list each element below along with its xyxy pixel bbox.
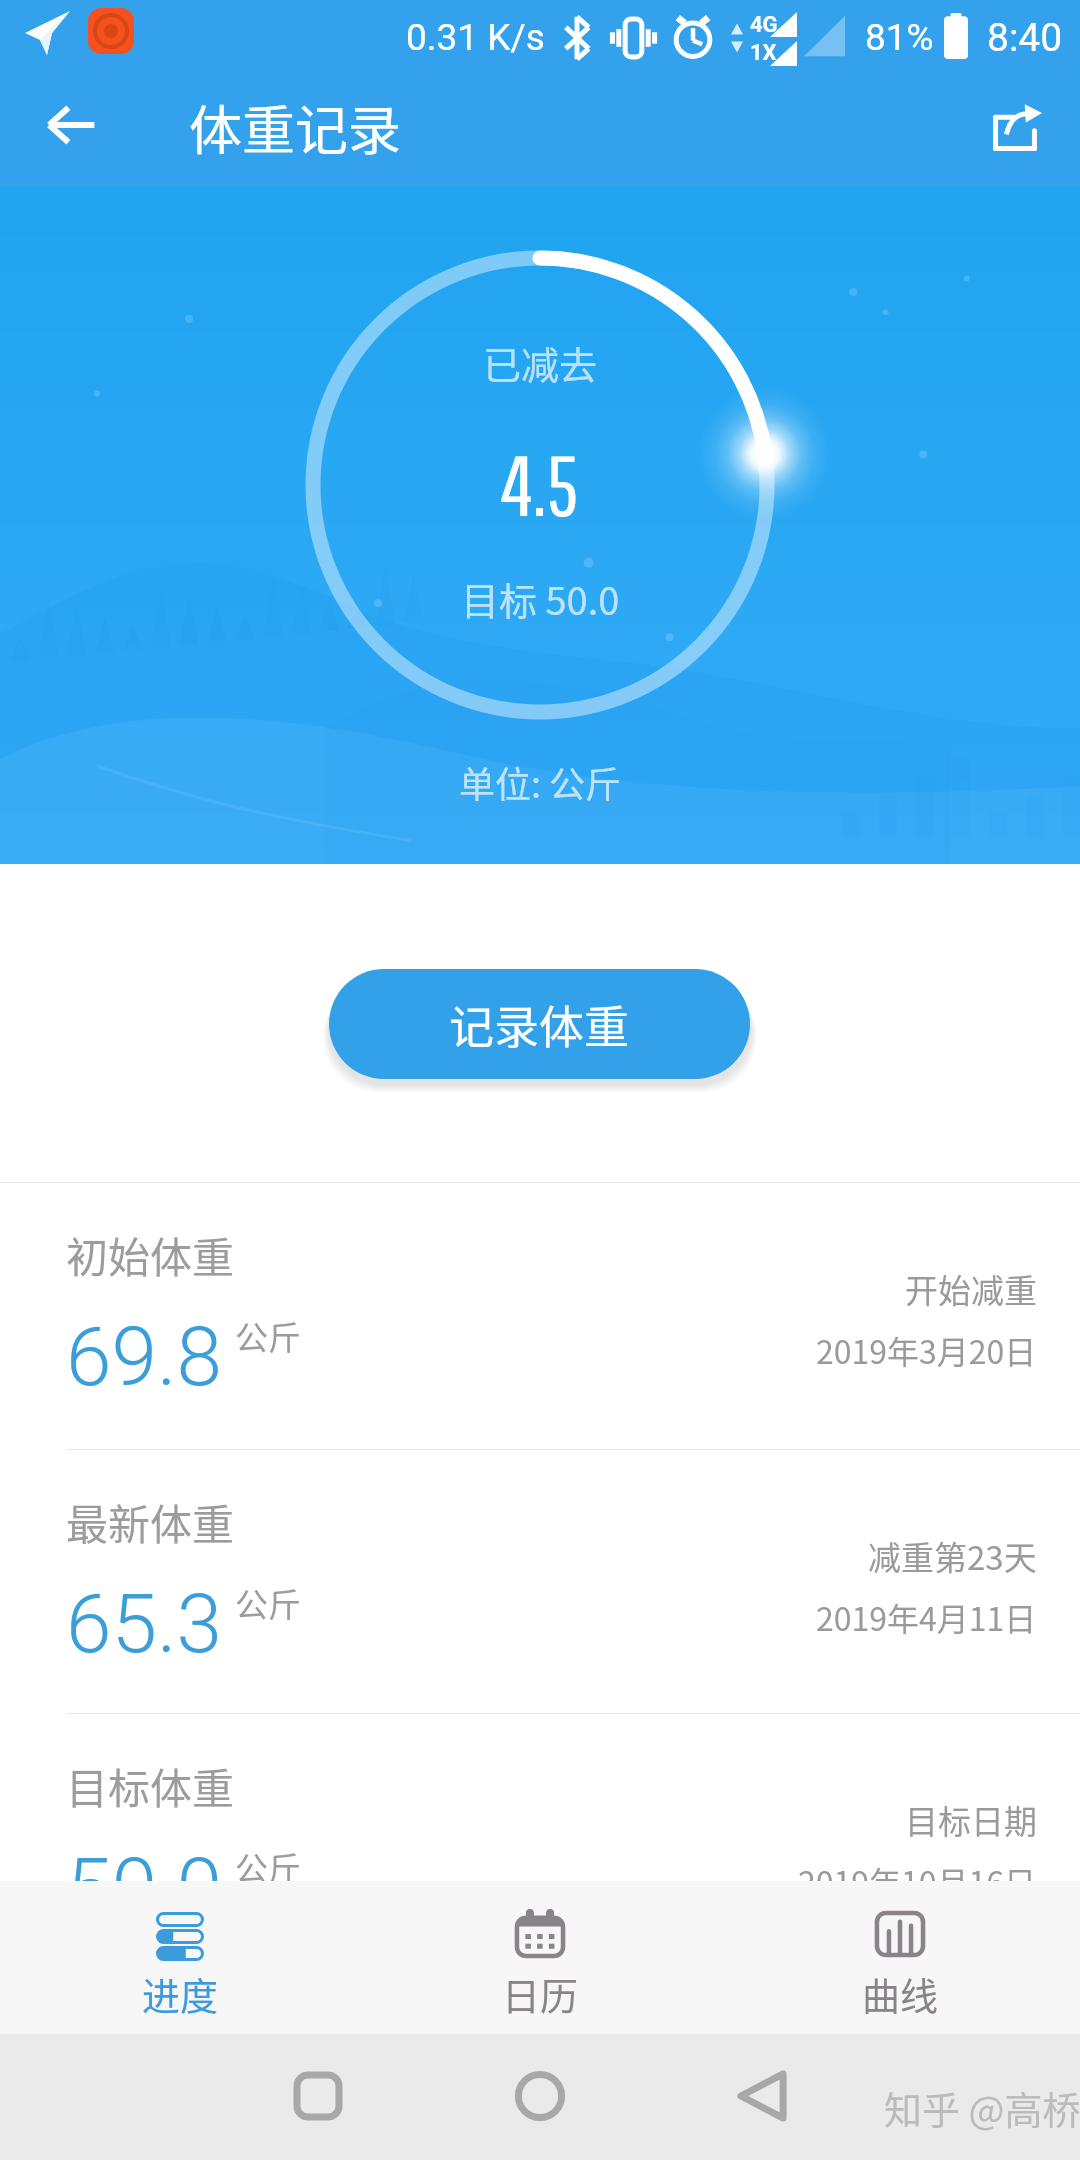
staticText: 进度 [142,1966,219,2021]
button[interactable]: Share [977,90,1053,166]
staticText: 4.5 [501,436,579,533]
staticText: 曲线 [862,1966,939,2021]
staticText: 81% [865,16,934,59]
button[interactable]: 最新体重 [0,1450,1080,1713]
staticText: 体重记录 [189,89,401,166]
staticText: 最新体重 [66,1491,235,1552]
staticText: 目标体重 [66,1755,235,1816]
staticText: 公斤 [235,1843,301,1891]
staticText: 目标日期 [905,1796,1037,1844]
staticText: 公斤 [235,1579,301,1627]
staticText: 50.0 [66,1840,223,1936]
staticText: 1X [750,40,777,66]
staticText: 记录体重 [449,992,630,1057]
button[interactable]: Back [726,2060,798,2132]
staticText: 2019年10月16日 [798,1858,1037,1904]
staticText: 69.8 [66,1309,223,1405]
button[interactable]: 目标体重 [0,1714,1080,1980]
button[interactable]: 曲线 [720,1881,1080,2034]
staticText: 4G [750,12,778,38]
button[interactable]: 日历 [360,1881,720,2034]
button[interactable]: 初始体重 [0,1183,1080,1449]
staticText: 已减去 [483,335,598,390]
button[interactable]: 进度 [0,1881,360,2034]
staticText: 开始减重 [905,1265,1037,1313]
staticText: 65.3 [66,1576,223,1672]
staticText: 公斤 [235,1312,301,1360]
staticText: 单位: 公斤 [459,756,622,808]
staticText: 0.31 K/s [406,16,545,59]
staticText: 日历 [502,1966,579,2021]
button[interactable]: Recents [282,2060,354,2132]
button[interactable]: Back [33,87,109,163]
staticText: 目标 50.0 [461,571,620,626]
staticText: 初始体重 [66,1224,235,1285]
button[interactable]: 记录体重 [329,969,750,1079]
button[interactable]: Home [504,2060,576,2132]
staticText: 8:40 [987,15,1063,61]
staticText: 2019年3月20日 [816,1327,1037,1373]
staticText: 知乎 @高桥 [884,2080,1080,2135]
staticText: 减重第23天 [868,1532,1037,1580]
staticText: 2019年4月11日 [816,1594,1037,1640]
